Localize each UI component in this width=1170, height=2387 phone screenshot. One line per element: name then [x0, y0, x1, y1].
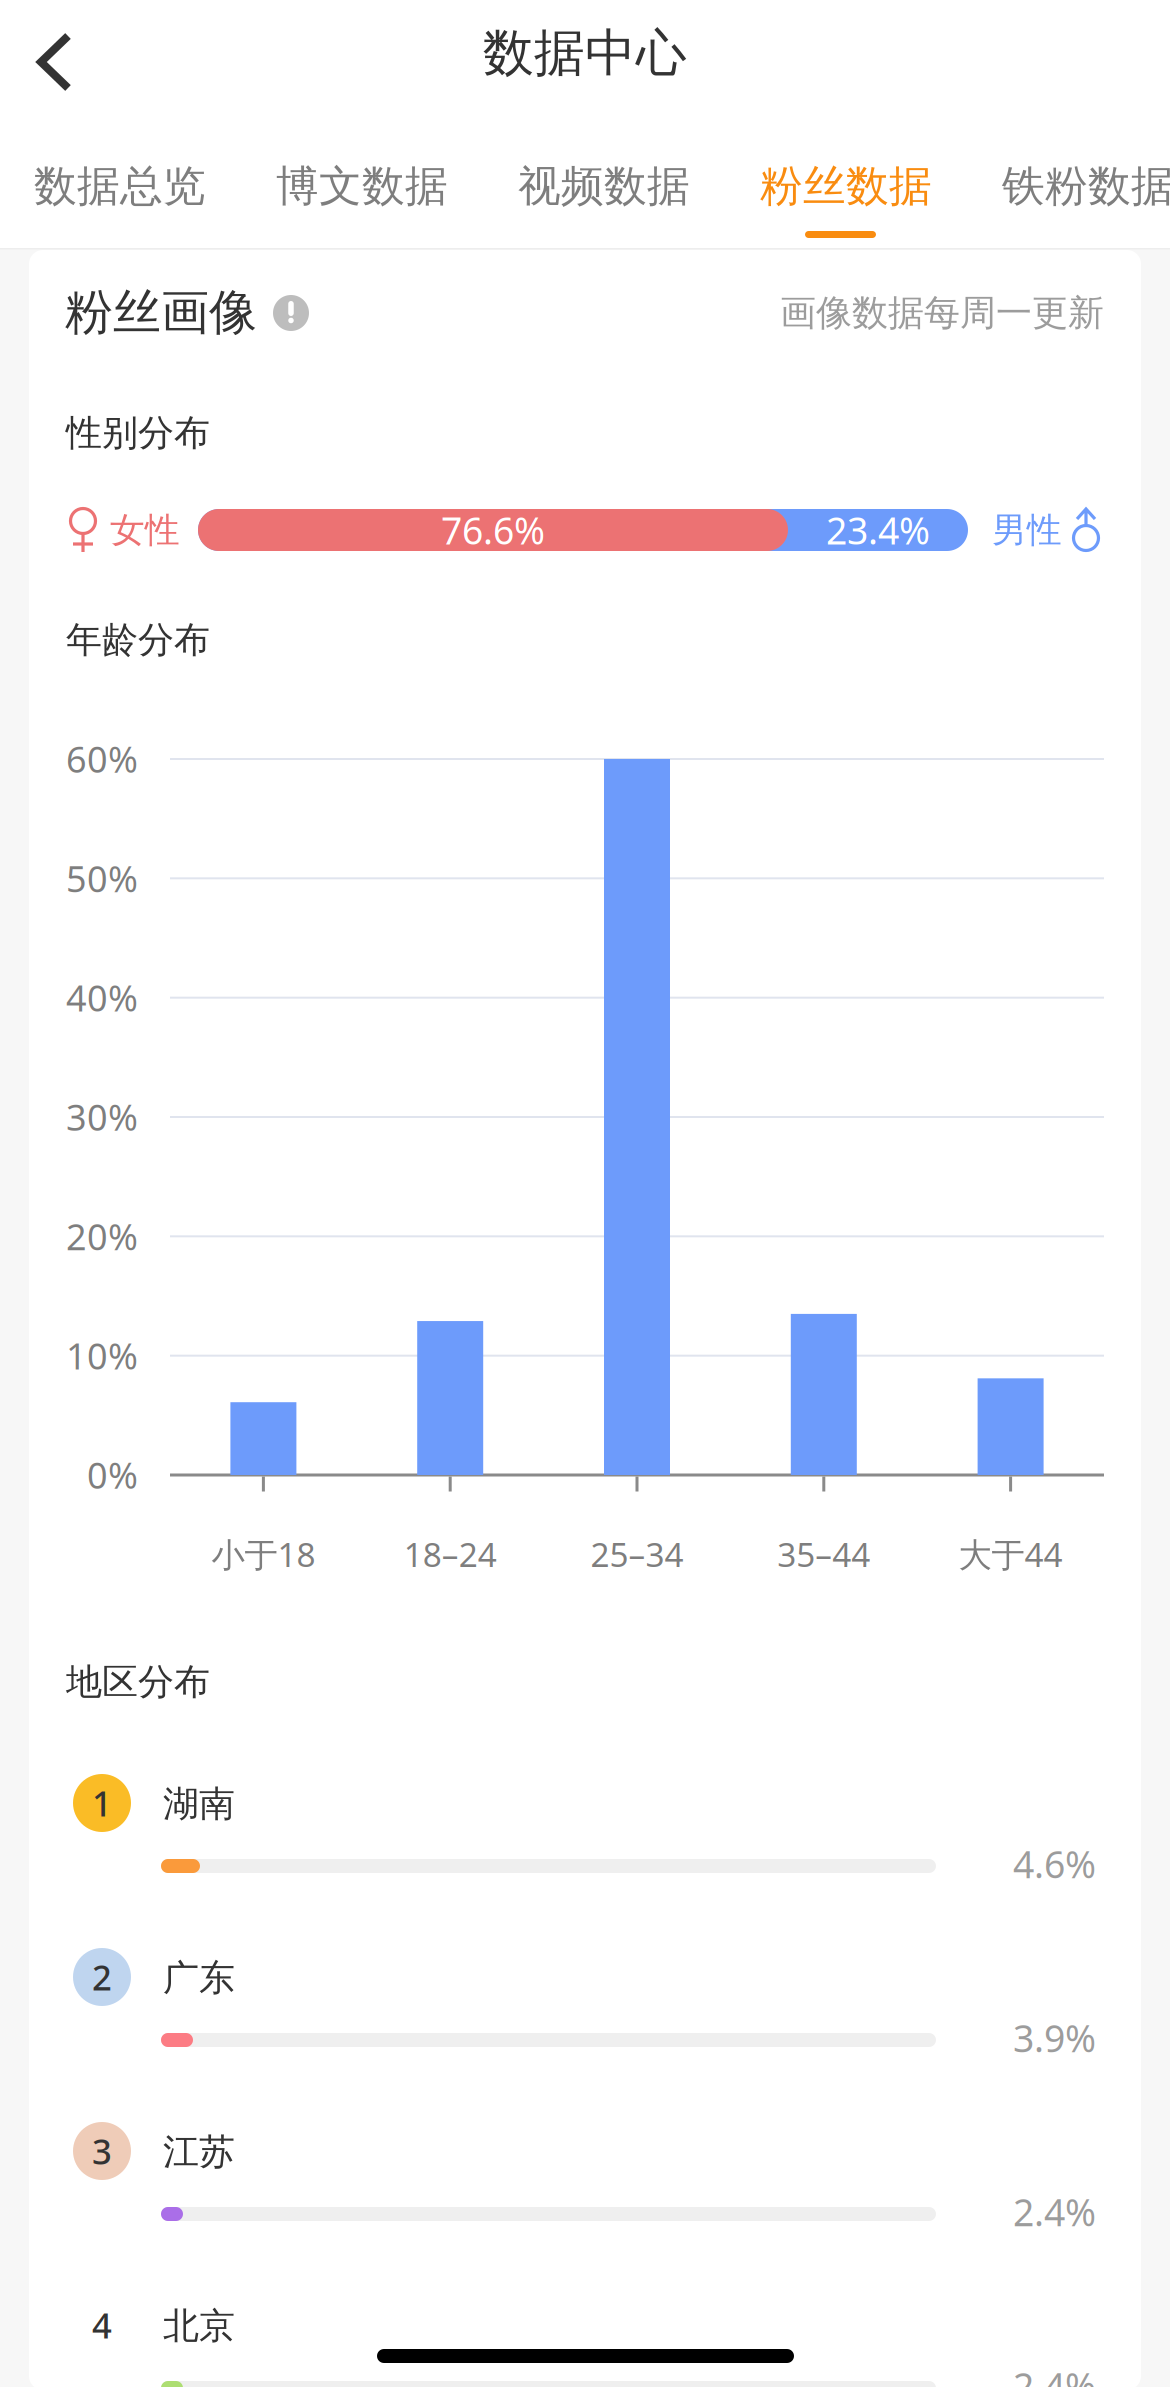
staticText: 性别分布 — [66, 411, 210, 455]
staticText: 湖南 — [163, 1782, 235, 1826]
staticText: 广东 — [163, 1956, 235, 2000]
staticText: 50% — [66, 854, 138, 902]
staticText: 60% — [66, 735, 138, 783]
button[interactable]: 粉丝数据 — [760, 142, 950, 250]
button[interactable]: 视频数据 — [518, 142, 708, 250]
staticText: 40% — [66, 974, 138, 1021]
button[interactable]: 4 — [45, 2279, 1125, 2387]
staticText: 10% — [66, 1332, 138, 1379]
staticText: 4 — [92, 2302, 112, 2348]
staticText: 年龄分布 — [66, 618, 210, 662]
staticText: 2.4% — [1013, 2361, 1096, 2387]
staticText: 小于18 — [211, 1532, 315, 1576]
button[interactable]: 数据总览 — [34, 142, 224, 250]
staticText: 女性 — [110, 509, 180, 552]
staticText: 北京 — [163, 2304, 235, 2348]
staticText: 4.6% — [1013, 1839, 1096, 1889]
button[interactable]: 3 — [45, 2105, 1125, 2251]
staticText: 2.4% — [1013, 2187, 1096, 2237]
staticText: 18–24 — [404, 1532, 497, 1576]
staticText: 视频数据 — [518, 160, 690, 212]
staticText: 数据中心 — [483, 22, 687, 84]
staticText: 铁粉数据 — [1002, 160, 1170, 212]
staticText: 3.9% — [1013, 2013, 1096, 2063]
button[interactable]: 返回 — [0, 0, 120, 128]
button[interactable]: 2 — [45, 1931, 1125, 2077]
staticText: 粉丝数据 — [760, 160, 932, 212]
staticText: 0% — [87, 1451, 138, 1499]
staticText: 76.6% — [441, 505, 545, 555]
staticText: 20% — [66, 1212, 138, 1260]
staticText: 30% — [66, 1093, 138, 1141]
staticText: 大于44 — [959, 1532, 1063, 1576]
button[interactable]: 博文数据 — [276, 142, 466, 250]
staticText: 1 — [92, 1780, 112, 1826]
staticText: 2 — [92, 1954, 112, 2000]
staticText: 35–44 — [777, 1532, 870, 1576]
staticText: 地区分布 — [66, 1660, 210, 1704]
staticText: 男性 — [992, 509, 1062, 552]
staticText: 数据总览 — [34, 160, 206, 212]
button[interactable]: 1 — [45, 1757, 1125, 1903]
staticText: 3 — [92, 2128, 112, 2174]
staticText: 画像数据每周一更新 — [780, 291, 1104, 335]
staticText: 粉丝画像 — [65, 283, 257, 342]
button[interactable]: 铁粉数据 — [1002, 142, 1170, 250]
staticText: 25–34 — [590, 1532, 683, 1576]
staticText: 博文数据 — [276, 160, 448, 212]
staticText: 江苏 — [163, 2130, 235, 2174]
staticText: 23.4% — [826, 505, 930, 555]
